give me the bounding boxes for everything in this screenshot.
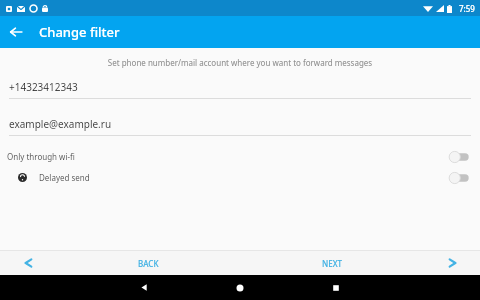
button[interactable]: NEXT [240,251,424,275]
button[interactable]: example@example.ru [0,117,480,136]
button[interactable]: Home [192,275,288,300]
button[interactable]: Previous step [0,251,56,275]
staticText: example@example.ru [9,117,112,131]
staticText: 7:59 [459,3,475,14]
button[interactable]: Delayed send [0,167,480,188]
staticText: NEXT [322,258,343,269]
staticText: BACK [138,258,159,269]
staticText: Change filter [39,23,120,41]
button[interactable]: Toggle switch [448,171,471,185]
button[interactable]: Navigate up [0,16,32,48]
staticText: Only through wi-fi [7,151,75,162]
button[interactable]: Next step [424,251,480,275]
button[interactable]: BACK [56,251,240,275]
button[interactable]: Recent apps [288,275,384,300]
staticText: Delayed send [39,172,90,183]
button[interactable]: Back [96,275,192,300]
staticText: Set phone number/mail account where you … [0,57,480,68]
button[interactable]: Only through wi-fi [0,146,480,167]
staticText: +14323412343 [9,80,78,94]
button[interactable]: +14323412343 [0,80,480,99]
button[interactable]: Toggle switch [448,150,471,164]
